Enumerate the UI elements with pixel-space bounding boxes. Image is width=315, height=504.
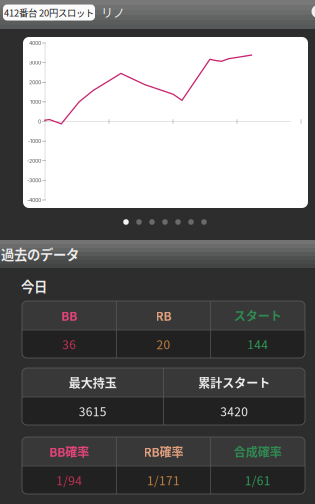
- staticText: RB確率: [143, 443, 183, 460]
- staticText: RB: [155, 307, 171, 324]
- staticText: 144: [247, 335, 268, 353]
- staticText: 1000: [30, 99, 41, 105]
- staticText: 1/94: [56, 471, 82, 489]
- staticText: 合成確率: [234, 443, 282, 460]
- staticText: 過去のデータ: [1, 244, 79, 264]
- staticText: スタート: [234, 307, 282, 324]
- staticText: 3615: [79, 402, 107, 420]
- staticText: リノ: [101, 4, 125, 21]
- staticText: -1000: [28, 138, 41, 144]
- button[interactable]: メニュー: [311, 5, 315, 18]
- staticText: BB: [61, 307, 77, 324]
- staticText: 最大持玉: [69, 374, 117, 391]
- staticText: -4000: [27, 197, 41, 203]
- staticText: -3000: [27, 177, 41, 184]
- staticText: 3000: [29, 59, 41, 66]
- staticText: 20: [156, 335, 170, 353]
- staticText: 412番台 20円スロット: [4, 6, 94, 19]
- staticText: 3420: [220, 402, 248, 420]
- staticText: BB確率: [49, 443, 89, 460]
- staticText: -2000: [27, 157, 41, 164]
- staticText: 36: [62, 335, 76, 353]
- staticText: 今日: [21, 276, 47, 296]
- staticText: 4000: [29, 40, 41, 46]
- staticText: 2000: [29, 79, 41, 85]
- staticText: 累計スタート: [198, 374, 270, 391]
- staticText: 1/61: [245, 471, 271, 489]
- button[interactable]: 412番台 20円スロット: [3, 4, 95, 20]
- staticText: 0: [38, 118, 41, 125]
- staticText: 1/171: [147, 471, 180, 489]
